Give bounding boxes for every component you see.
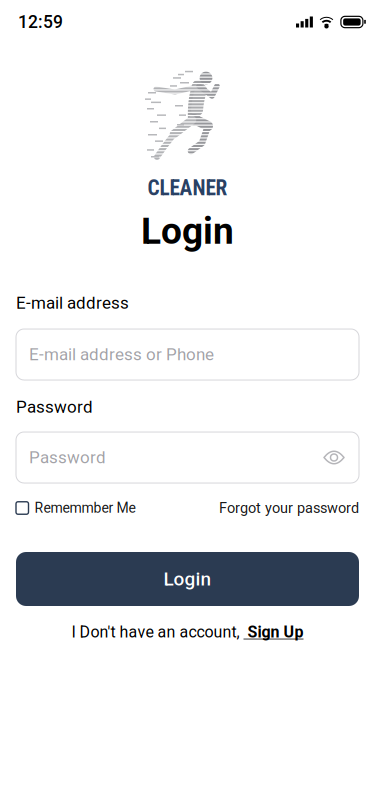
staticText: E-mail address [16,293,129,313]
staticText: Forgot your password [219,499,359,516]
staticText: Login [141,209,234,253]
staticText: E-mail address or Phone [29,344,214,364]
staticText: Rememmber Me [34,500,135,516]
staticText: Login [163,568,211,590]
staticText: Password [29,447,106,467]
staticText: CLEANER [147,175,227,200]
staticText: Sign Up [243,623,303,641]
button[interactable]: Login [16,552,359,606]
button[interactable]: Forgot your password [219,499,359,516]
staticText: 12:59 [18,12,63,32]
button[interactable]: Sign Up [243,623,303,641]
staticText: I Don't have an account, [71,623,243,641]
button[interactable]: Show password [323,450,359,464]
button[interactable]: Rememmber Me [16,500,135,516]
staticText: Password [16,397,93,417]
